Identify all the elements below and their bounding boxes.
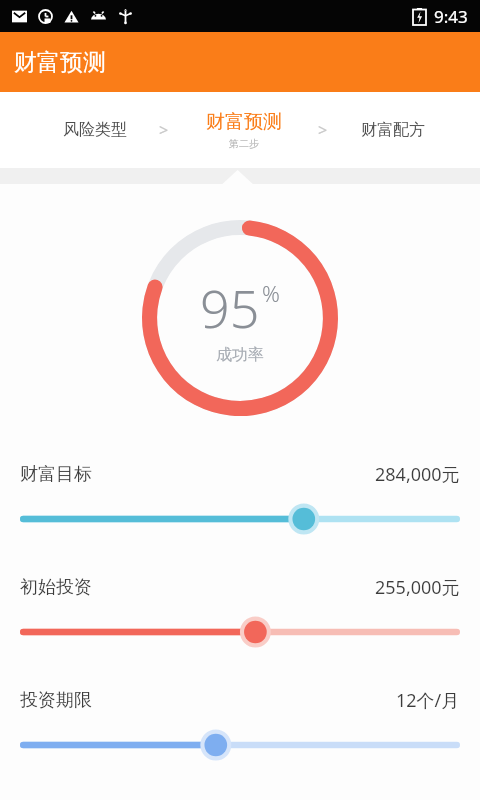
staticText: > [159,119,169,141]
staticText: 成功率 [216,345,264,365]
staticText: 财富预测 [206,110,282,134]
button[interactable]: 财富配方 [328,120,458,140]
staticText: 财富目标 [20,463,92,486]
staticText: 95 [200,272,260,343]
button[interactable]: 初始投资 [0,575,480,650]
staticText: 初始投资 [20,576,92,599]
staticText: 284,000元 [375,462,460,487]
staticText: 投资期限 [20,689,92,712]
button[interactable]: 风险类型 [30,120,159,140]
staticText: 财富预测 [14,48,106,77]
button[interactable]: 财富预测 [169,110,318,150]
staticText: 12个/月 [396,688,460,713]
staticText: 风险类型 [63,120,127,140]
staticText: 财富配方 [361,120,425,140]
staticText: 255,000元 [375,575,460,600]
button[interactable]: 投资期限 [0,688,480,763]
staticText: 第二步 [229,137,259,150]
staticText: > [318,119,328,141]
staticText: % [262,278,280,308]
button[interactable]: 财富目标 [0,462,480,537]
staticText: 9:43 [434,5,468,28]
